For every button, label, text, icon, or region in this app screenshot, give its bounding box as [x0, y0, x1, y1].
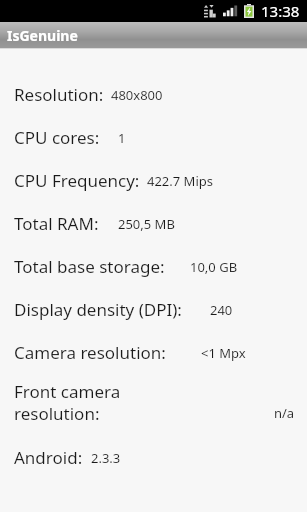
staticText: 480x800: [111, 86, 163, 104]
staticText: 1: [118, 129, 126, 147]
staticText: CPU Frequency:: [14, 169, 140, 192]
other: 3G data: [204, 5, 217, 18]
staticText: Display density (DPI):: [14, 298, 182, 321]
staticText: Resolution:: [14, 83, 104, 106]
staticText: 2.3.3: [91, 449, 121, 467]
staticText: n/a: [274, 404, 295, 422]
button[interactable]: Android:: [0, 436, 307, 479]
staticText: 422.7 Mips: [147, 172, 213, 190]
other: Signal strength: [223, 5, 237, 17]
other: Battery charging: [244, 4, 254, 18]
staticText: <1 Mpx: [201, 344, 246, 362]
staticText: 250,5 MB: [118, 215, 175, 233]
staticText: Android:: [14, 446, 83, 469]
button[interactable]: Camera resolution:: [0, 331, 307, 374]
button[interactable]: Front camera resolution:: [0, 374, 307, 436]
staticText: Front camera resolution:: [14, 380, 274, 425]
button[interactable]: Display density (DPI):: [0, 288, 307, 331]
button[interactable]: Total RAM:: [0, 202, 307, 245]
staticText: Camera resolution:: [14, 341, 166, 364]
button[interactable]: Resolution:: [0, 73, 307, 116]
staticText: Total RAM:: [14, 212, 99, 235]
staticText: CPU cores:: [14, 126, 100, 149]
button[interactable]: CPU Frequency:: [0, 159, 307, 202]
staticText: 10,0 GB: [190, 258, 238, 276]
staticText: Total base storage:: [14, 255, 165, 278]
button[interactable]: Total base storage:: [0, 245, 307, 288]
staticText: 13:38: [261, 1, 300, 21]
staticText: IsGenuine: [7, 26, 78, 45]
staticText: 240: [210, 301, 233, 319]
button[interactable]: CPU cores:: [0, 116, 307, 159]
